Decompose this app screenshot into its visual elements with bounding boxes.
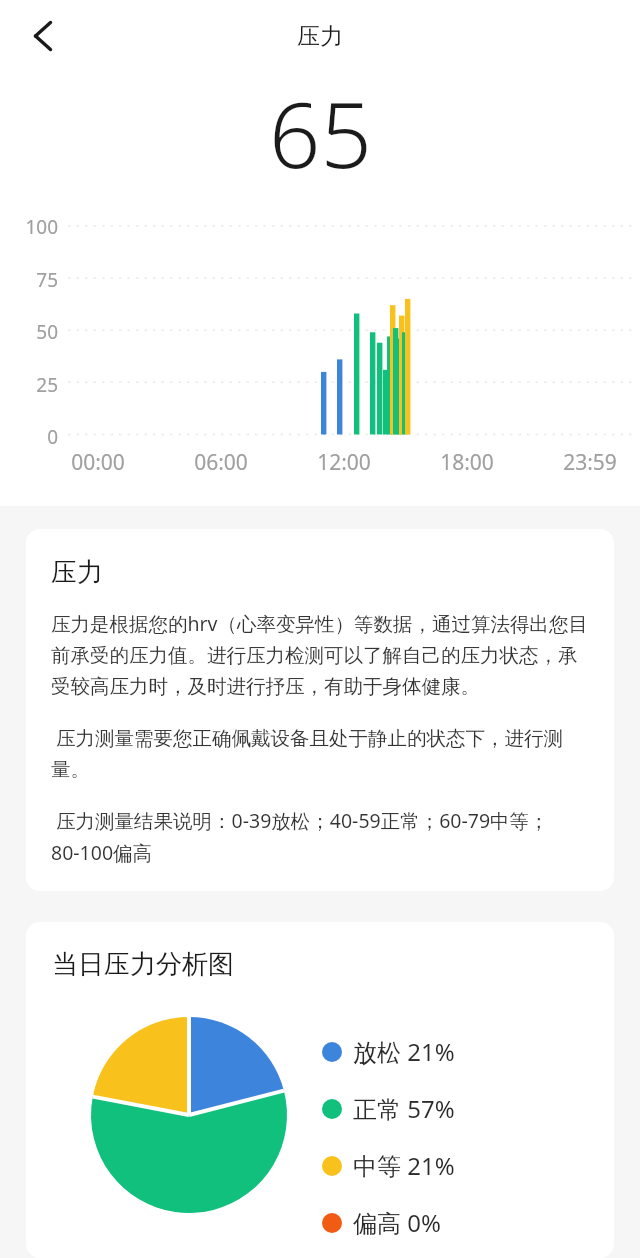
button[interactable]: 放松 21%	[322, 1035, 455, 1068]
staticText: 当日压力分析图	[52, 948, 234, 981]
staticText: 偏高 0%	[353, 1206, 441, 1239]
staticText: 23:59	[542, 448, 638, 477]
staticText: 0	[0, 424, 58, 450]
staticText: 75	[0, 267, 58, 293]
staticText: 压力测量需要您正确佩戴设备且处于静止的状态下，进行测量。	[51, 724, 590, 782]
staticText: 中等 21%	[353, 1149, 455, 1182]
staticText: 65	[269, 72, 372, 194]
staticText: 100	[0, 214, 58, 240]
staticText: 压力	[297, 22, 343, 51]
staticText: 压力是根据您的hrv（心率变异性）等数据，通过算法得出您目前承受的压力值。进行压…	[51, 610, 590, 699]
staticText: 12:00	[296, 448, 392, 477]
staticText: 压力测量结果说明：0-39放松；40-59正常；60-79中等；80-100偏高	[51, 807, 590, 866]
staticText: 50	[0, 319, 58, 345]
button[interactable]: Back	[15, 8, 71, 64]
button[interactable]: 中等 21%	[322, 1149, 455, 1182]
staticText: 正常 57%	[353, 1092, 455, 1125]
button[interactable]: 偏高 0%	[322, 1206, 441, 1239]
staticText: 06:00	[173, 448, 269, 477]
staticText: 00:00	[50, 448, 146, 477]
staticText: 18:00	[419, 448, 515, 477]
staticText: 25	[0, 372, 58, 398]
staticText: 压力	[51, 556, 103, 589]
staticText: 放松 21%	[353, 1035, 455, 1068]
button[interactable]: 正常 57%	[322, 1092, 455, 1125]
